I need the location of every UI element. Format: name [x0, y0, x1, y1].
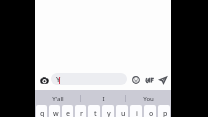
button[interactable]: t [88, 105, 100, 117]
button[interactable]: I [81, 90, 126, 105]
button[interactable]: Y'all [35, 90, 81, 105]
staticText: Y [56, 74, 61, 84]
staticText: t [94, 109, 97, 117]
staticText: w [53, 109, 59, 117]
button[interactable]: w [49, 105, 60, 117]
button[interactable]: y [102, 105, 114, 117]
button[interactable]: u [116, 105, 128, 117]
button[interactable]: p [158, 105, 170, 117]
button[interactable]: GIF [144, 73, 156, 85]
button[interactable]: Camera [38, 73, 50, 85]
staticText: You [143, 95, 154, 103]
button[interactable]: Send [157, 73, 169, 85]
button[interactable]: i [130, 105, 142, 117]
staticText: p [163, 109, 168, 117]
button[interactable]: Emoji [130, 73, 142, 85]
staticText: u [121, 109, 126, 117]
button[interactable]: Y [51, 73, 127, 85]
button[interactable]: e [62, 105, 73, 117]
staticText: I [102, 95, 105, 103]
staticText: r [80, 109, 83, 117]
staticText: o [149, 109, 154, 117]
button[interactable]: q [36, 105, 47, 117]
staticText: i [136, 109, 138, 117]
staticText: y [107, 109, 111, 117]
staticText: Y'all [52, 95, 64, 103]
button[interactable]: You [126, 90, 171, 105]
button[interactable]: r [75, 105, 86, 117]
staticText: e [66, 109, 71, 117]
button[interactable]: o [144, 105, 156, 117]
staticText: q [40, 109, 45, 117]
